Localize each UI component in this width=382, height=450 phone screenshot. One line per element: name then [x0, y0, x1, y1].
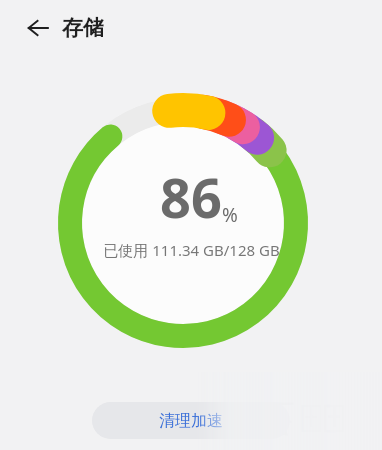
- staticText: 存储: [62, 15, 104, 41]
- staticText: 已使用 111.34 GB/128 GB: [103, 240, 280, 260]
- button[interactable]: 清理加速: [92, 402, 290, 439]
- button[interactable]: Back: [20, 10, 56, 46]
- staticText: 清理加速: [159, 411, 223, 431]
- staticText: %: [222, 202, 238, 228]
- staticText: 86: [160, 160, 222, 234]
